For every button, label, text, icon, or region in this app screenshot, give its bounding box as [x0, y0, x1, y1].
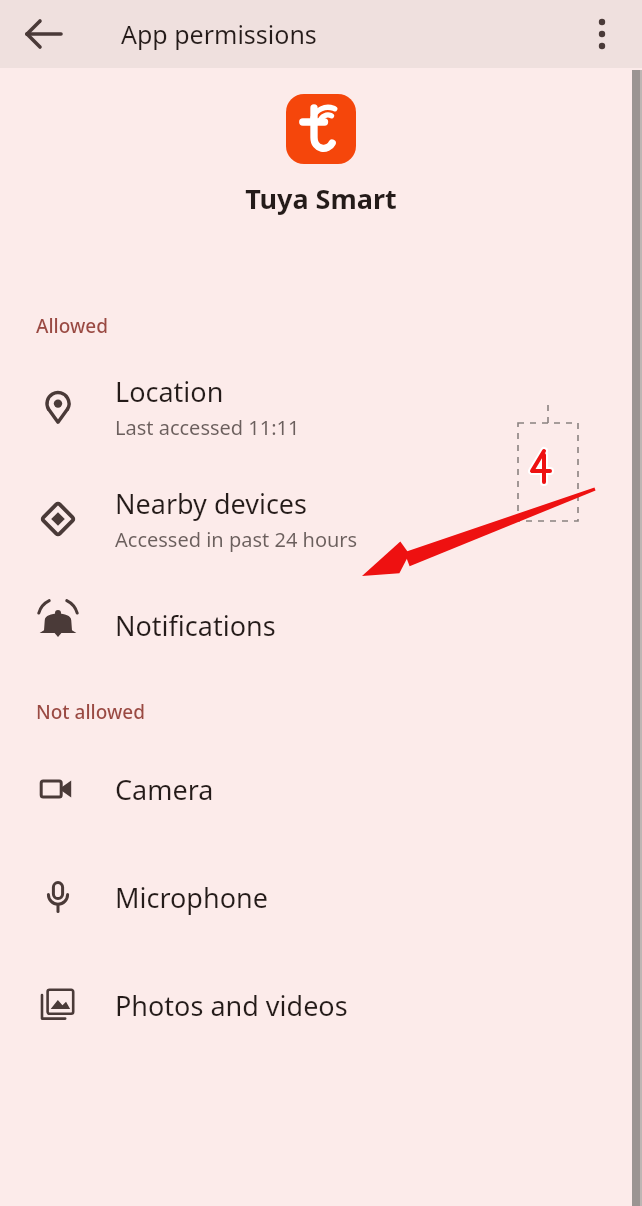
button[interactable]: Nearby devices: [0, 485, 642, 553]
button[interactable]: Notifications: [0, 597, 642, 653]
staticText: Microphone: [115, 879, 268, 916]
button[interactable]: Photos and videos: [0, 977, 642, 1033]
staticText: Accessed in past 24 hours: [115, 526, 358, 553]
staticText: Not allowed: [36, 699, 145, 725]
staticText: Photos and videos: [115, 987, 348, 1024]
button[interactable]: Microphone: [0, 869, 642, 925]
button[interactable]: Location: [0, 373, 642, 441]
staticText: Notifications: [115, 607, 276, 644]
staticText: Allowed: [36, 313, 108, 339]
staticText: Last accessed 11:11: [115, 414, 300, 441]
button[interactable]: More options: [578, 10, 626, 58]
button[interactable]: Camera: [0, 761, 642, 817]
staticText: Nearby devices: [115, 485, 307, 522]
staticText: App permissions: [121, 17, 317, 51]
staticText: Camera: [115, 771, 214, 808]
button[interactable]: Back: [16, 6, 72, 62]
staticText: Location: [115, 373, 224, 410]
staticText: Tuya Smart: [245, 180, 397, 217]
